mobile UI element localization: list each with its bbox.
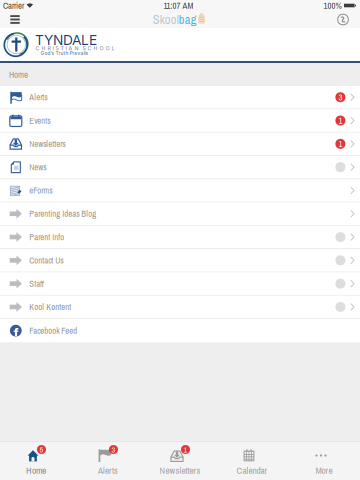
staticText: bag: [179, 11, 197, 28]
staticText: C H R I S T I A N S C H O O L: [36, 45, 115, 51]
button[interactable]: Kool Kontent: [0, 296, 360, 319]
staticText: Skool: [153, 11, 179, 28]
staticText: Events: [29, 115, 50, 126]
staticText: Facebook Feed: [29, 325, 77, 336]
staticText: More: [315, 464, 332, 477]
staticText: 100%: [324, 0, 342, 11]
staticText: Staff: [29, 278, 44, 289]
button[interactable]: 5: [0, 441, 72, 480]
staticText: Newsletters: [29, 138, 65, 150]
staticText: Home: [9, 69, 28, 80]
staticText: News: [29, 161, 46, 173]
staticText: Parenting Ideas Blog: [29, 208, 96, 219]
staticText: 3: [111, 444, 115, 455]
staticText: TYNDALE: [35, 32, 97, 48]
staticText: Parent Info: [29, 231, 64, 243]
button[interactable]: 3: [72, 441, 144, 480]
button[interactable]: Parenting Ideas Blog: [0, 202, 360, 226]
staticText: Calendar: [236, 464, 267, 477]
button[interactable]: Parent Info: [0, 226, 360, 249]
button[interactable]: Menu: [2, 11, 28, 28]
button[interactable]: Events: [0, 109, 360, 133]
staticText: Alerts: [29, 91, 47, 103]
staticText: God's Truth Prevails: [41, 50, 89, 56]
button[interactable]: Contact Us: [0, 249, 360, 272]
staticText: 1: [183, 444, 187, 455]
button[interactable]: eForms: [0, 179, 360, 202]
staticText: Carrier: [3, 0, 24, 11]
staticText: eForms: [29, 185, 52, 196]
staticText: Newsletters: [159, 464, 200, 477]
staticText: 5: [39, 444, 43, 455]
button[interactable]: Newsletters: [0, 133, 360, 156]
button[interactable]: Staff: [0, 272, 360, 296]
button[interactable]: Facebook Feed: [0, 319, 360, 342]
button[interactable]: More: [288, 441, 360, 480]
staticText: 1: [338, 138, 342, 150]
staticText: Kool Kontent: [29, 301, 71, 313]
button[interactable]: News: [0, 156, 360, 179]
staticText: Home: [26, 464, 46, 477]
staticText: 3: [338, 91, 342, 103]
button[interactable]: Calendar: [216, 441, 288, 480]
button[interactable]: Alerts: [0, 86, 360, 109]
staticText: 1: [338, 115, 342, 126]
button[interactable]: 1: [144, 441, 216, 480]
button[interactable]: Refresh: [330, 11, 356, 28]
staticText: Alerts: [98, 464, 118, 477]
staticText: Contact Us: [29, 255, 63, 266]
staticText: 11:07 AM: [163, 0, 193, 11]
